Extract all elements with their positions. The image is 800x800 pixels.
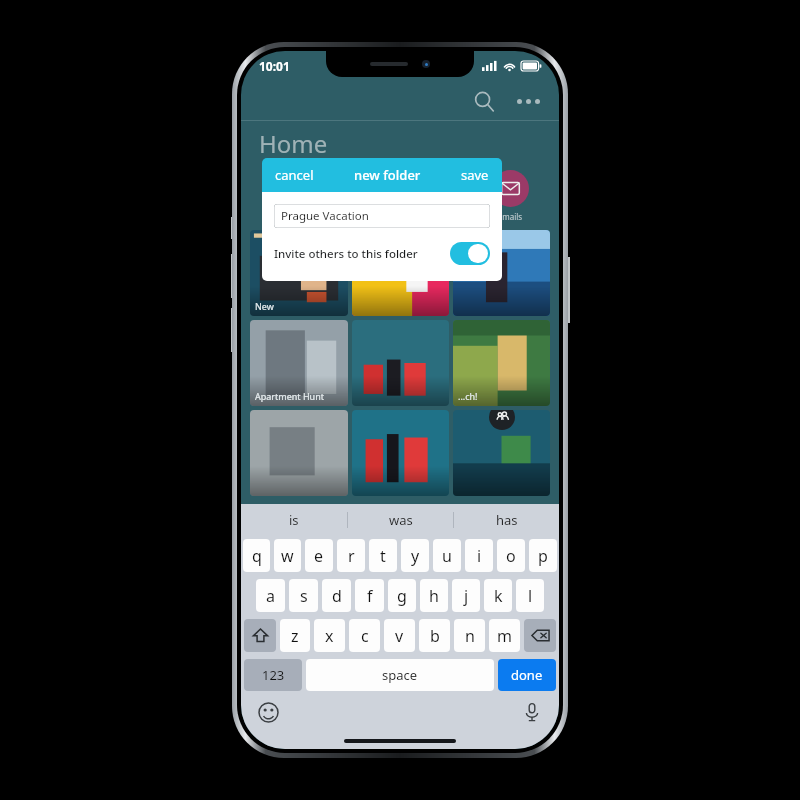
button[interactable] [352,230,449,316]
staticText: f [367,585,373,607]
staticText: p [538,545,548,567]
staticText: done [511,666,543,684]
staticText: is [289,511,299,529]
button[interactable]: Search [467,84,501,118]
staticText: Emails [473,211,547,222]
staticText: o [506,545,516,567]
button[interactable] [453,230,550,316]
button[interactable]: i [465,539,493,572]
staticText: r [348,545,355,567]
button[interactable]: g [388,579,416,612]
staticText: cancel [275,166,314,184]
button[interactable]: d [322,579,351,612]
button[interactable]: e [305,539,333,572]
button[interactable]: l [516,579,544,612]
button[interactable]: Dictation [519,699,545,725]
staticText: t [380,545,386,567]
staticText: v [395,625,404,647]
button[interactable]: has [454,504,559,536]
button[interactable]: q [243,539,270,572]
button[interactable]: is [241,504,347,536]
staticText: q [252,545,262,567]
button[interactable] [352,410,449,496]
staticText: b [430,625,440,647]
button[interactable]: Invite others to this folder [274,242,490,265]
button[interactable]: u [433,539,461,572]
staticText: new folder [354,166,421,184]
button[interactable] [352,320,449,406]
button[interactable]: f [355,579,384,612]
button[interactable]: b [419,619,450,652]
button[interactable]: p [529,539,557,572]
staticText: Prague Vacation [281,208,369,224]
staticText: z [291,625,299,647]
button[interactable]: done [498,659,556,691]
button[interactable]: x [314,619,345,652]
staticText: has [496,511,518,529]
button[interactable]: Recent [253,168,326,224]
staticText: ...ch! [458,390,478,402]
staticText: l [528,585,533,607]
staticText: Recent [253,211,326,222]
button[interactable]: 123 [244,659,302,691]
button[interactable]: ...ch! [453,320,550,406]
staticText: 123 [262,666,285,684]
button[interactable]: r [337,539,365,572]
button[interactable]: save [459,162,491,188]
button[interactable]: h [420,579,448,612]
staticText: New [255,300,274,312]
staticText: save [461,166,489,184]
button[interactable]: Shared With Me [326,168,399,224]
staticText: Invite others to this folder [274,246,418,262]
staticText: Shared With Me [326,211,399,222]
button[interactable]: Prague Vacation [274,204,490,228]
staticText: y [411,545,420,567]
staticText: 10:01 [259,58,290,74]
button[interactable]: y [401,539,429,572]
staticText: a [266,585,275,607]
staticText: Home [259,127,328,160]
staticText: j [464,585,469,607]
staticText: c [361,625,369,647]
button[interactable]: n [454,619,485,652]
button[interactable]: cancel [273,162,316,188]
staticText: h [429,585,439,607]
button[interactable]: t [369,539,397,572]
button[interactable]: k [484,579,512,612]
button[interactable] [453,410,550,496]
staticText: n [465,625,475,647]
staticText: was [389,511,413,529]
staticText: s [300,585,308,607]
staticText: m [497,625,512,647]
button[interactable]: Review Later [399,168,473,224]
button[interactable]: Emoji [255,699,281,725]
button[interactable]: m [489,619,520,652]
button[interactable]: Apartment Hunt [250,320,348,406]
button[interactable]: Emails [473,168,547,224]
button[interactable]: z [280,619,310,652]
button[interactable]: was [348,504,453,536]
staticText: d [332,585,342,607]
staticText: k [494,585,503,607]
button[interactable]: space [306,659,494,691]
button[interactable]: More options [511,84,545,118]
staticText: w [281,545,294,567]
button[interactable]: o [497,539,525,572]
button[interactable]: Backspace [524,619,556,652]
button[interactable]: j [452,579,480,612]
staticText: g [397,585,407,607]
button[interactable]: v [384,619,415,652]
button[interactable]: Shift [244,619,276,652]
staticText: u [442,545,452,567]
button[interactable]: s [289,579,318,612]
button[interactable]: w [274,539,301,572]
staticText: i [477,545,482,567]
staticText: x [325,625,334,647]
staticText: space [382,666,418,684]
staticText: e [314,545,324,567]
button[interactable]: New [250,230,348,316]
button[interactable]: c [349,619,380,652]
button[interactable] [250,410,348,496]
button[interactable]: a [256,579,285,612]
